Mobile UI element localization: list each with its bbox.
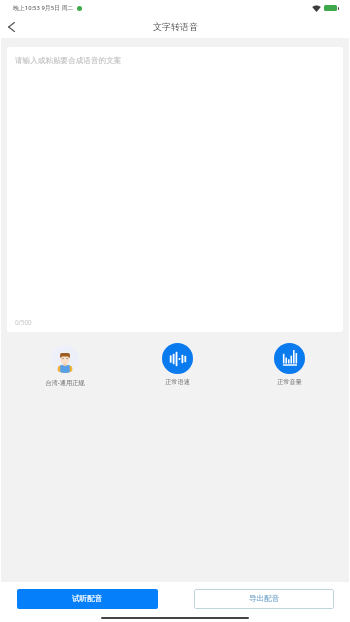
staticText: 晚上10:53 9月5日 周二 xyxy=(13,4,74,12)
staticText: 文字转语音 xyxy=(153,21,198,32)
staticText: 导出配音 xyxy=(249,594,280,604)
staticText: 台湾-通用正规 xyxy=(45,378,85,386)
button[interactable]: 试听配音 xyxy=(17,589,158,609)
button[interactable]: 正常语速 xyxy=(144,343,210,386)
staticText: 正常语速 xyxy=(165,378,190,386)
staticText: 正常音量 xyxy=(277,378,302,386)
button[interactable]: 正常音量 xyxy=(256,343,322,386)
staticText: 试听配音 xyxy=(72,594,103,604)
staticText: 请输入或粘贴要合成语音的文案 xyxy=(15,56,122,66)
staticText: 0/500 xyxy=(15,318,32,326)
button[interactable]: 返回 xyxy=(1,15,22,38)
button[interactable]: 台湾-通用正规 xyxy=(32,343,98,386)
button[interactable]: 导出配音 xyxy=(194,589,334,609)
